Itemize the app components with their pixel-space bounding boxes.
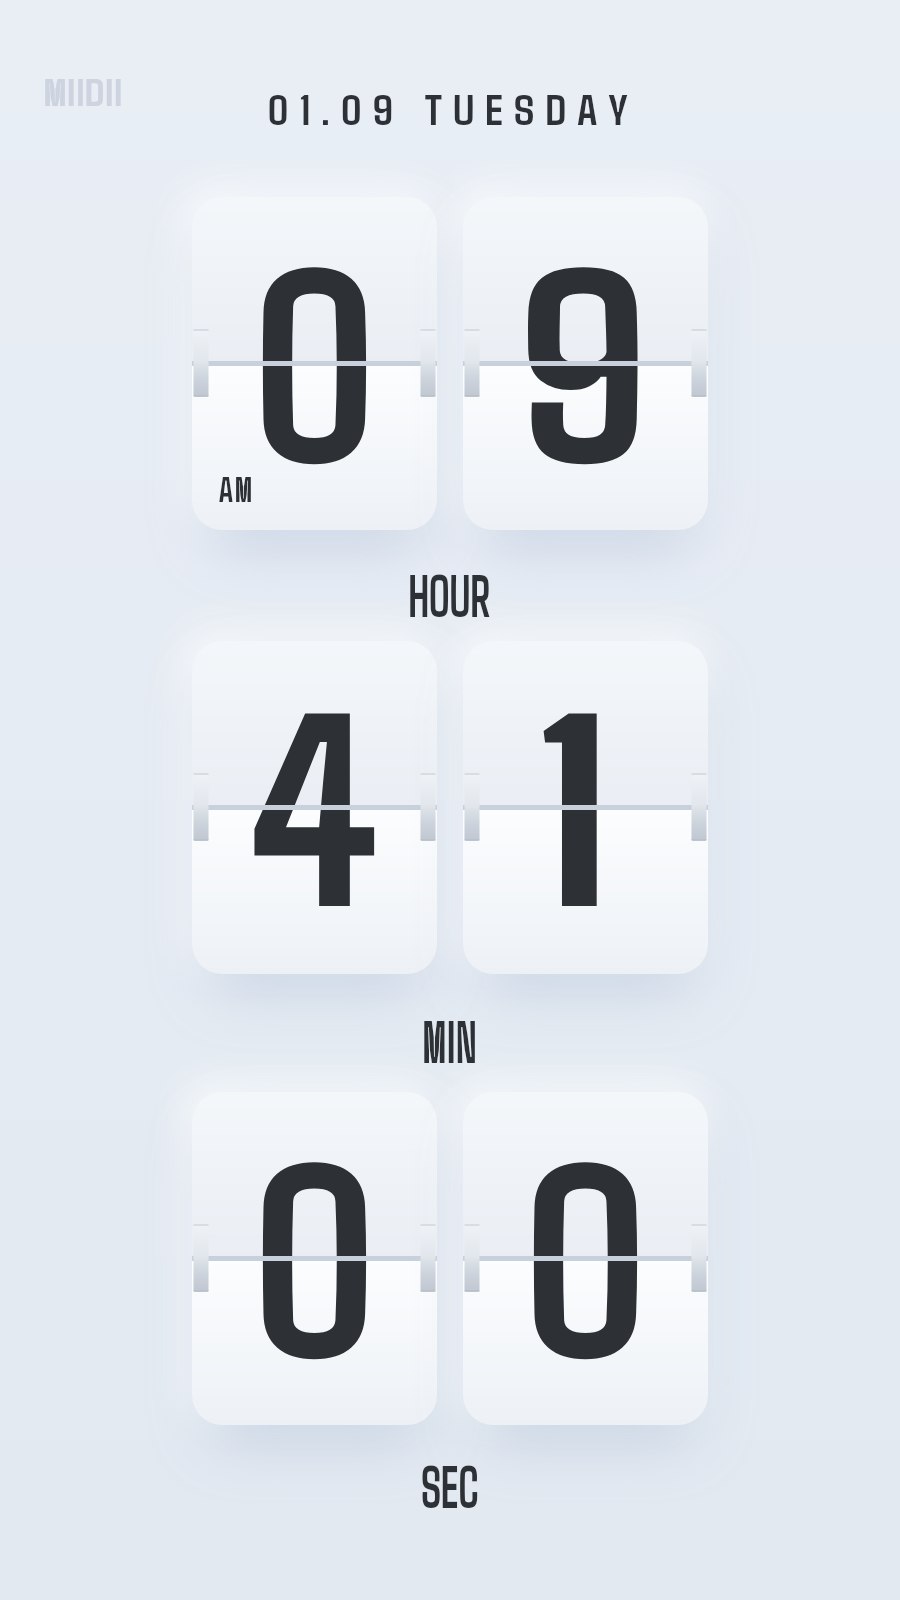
- staticText: HOUR: [409, 557, 491, 617]
- staticText: 1: [536, 631, 607, 961]
- button[interactable]: 4: [192, 641, 437, 974]
- staticText: MIN: [423, 1003, 477, 1063]
- staticText: 4: [247, 631, 377, 961]
- button[interactable]: 0: [192, 197, 437, 530]
- button[interactable]: 0: [463, 1092, 708, 1425]
- button[interactable]: 9: [463, 197, 708, 530]
- staticText: 9: [520, 187, 648, 517]
- staticText: 0: [254, 187, 375, 517]
- button[interactable]: 01.09 TUESDAY: [268, 82, 640, 133]
- staticText: 0: [254, 1082, 375, 1412]
- staticText: MIIDII: [44, 66, 124, 114]
- staticText: SEC: [421, 1448, 480, 1508]
- button[interactable]: 0: [192, 1092, 437, 1425]
- staticText: AM: [219, 468, 255, 509]
- staticText: 0: [525, 1082, 646, 1412]
- button[interactable]: 1: [463, 641, 708, 974]
